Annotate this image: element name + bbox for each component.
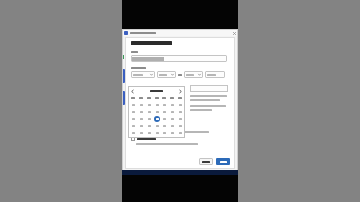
button[interactable]: [154, 102, 160, 108]
button[interactable]: [177, 109, 183, 115]
button[interactable]: [131, 55, 227, 62]
button[interactable]: Previous month: [130, 89, 135, 94]
button[interactable]: [177, 130, 183, 136]
button[interactable]: [154, 116, 160, 122]
button[interactable]: [138, 109, 144, 115]
button[interactable]: [131, 71, 155, 78]
button[interactable]: [154, 130, 160, 136]
button[interactable]: [169, 102, 175, 108]
button[interactable]: [199, 158, 213, 165]
button[interactable]: Notify attendees: [131, 137, 135, 141]
button[interactable]: [161, 123, 167, 129]
button[interactable]: [154, 109, 160, 115]
button[interactable]: [138, 123, 144, 129]
button[interactable]: [216, 158, 230, 165]
button[interactable]: Next month: [178, 89, 183, 94]
button[interactable]: [130, 109, 136, 115]
button[interactable]: [130, 102, 136, 108]
button[interactable]: Repeat: [131, 124, 135, 128]
button[interactable]: [161, 130, 167, 136]
button[interactable]: [169, 116, 175, 122]
button[interactable]: [130, 130, 136, 136]
button[interactable]: [146, 130, 152, 136]
button[interactable]: [161, 102, 167, 108]
button[interactable]: Close window: [232, 31, 236, 35]
button[interactable]: [138, 102, 144, 108]
button[interactable]: [138, 116, 144, 122]
button[interactable]: [190, 85, 228, 92]
button[interactable]: [177, 116, 183, 122]
button[interactable]: [146, 123, 152, 129]
button[interactable]: [205, 71, 225, 78]
button[interactable]: [177, 102, 183, 108]
button[interactable]: [169, 109, 175, 115]
button[interactable]: [169, 123, 175, 129]
button[interactable]: [184, 71, 203, 78]
button[interactable]: [138, 130, 144, 136]
button[interactable]: [157, 71, 176, 78]
button[interactable]: [130, 116, 136, 122]
button[interactable]: [130, 123, 136, 129]
button[interactable]: [161, 109, 167, 115]
button[interactable]: [161, 116, 167, 122]
button[interactable]: [177, 123, 183, 129]
button[interactable]: [146, 109, 152, 115]
button[interactable]: [154, 123, 160, 129]
button[interactable]: [146, 102, 152, 108]
button[interactable]: [151, 123, 170, 129]
button[interactable]: [169, 130, 175, 136]
button[interactable]: [146, 116, 152, 122]
